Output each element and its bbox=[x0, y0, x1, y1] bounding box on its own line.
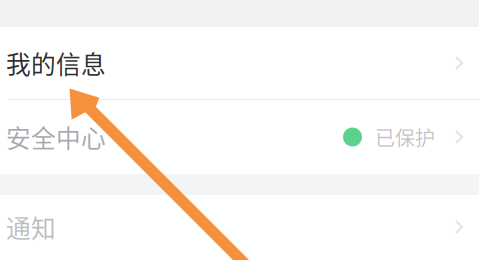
button[interactable]: 安全中心 bbox=[0, 100, 479, 174]
staticText: 我的信息 bbox=[6, 45, 106, 81]
button[interactable]: 通知 bbox=[0, 195, 479, 259]
staticText: 已保护 bbox=[375, 122, 435, 151]
button[interactable]: 我的信息 bbox=[0, 27, 479, 99]
staticText: 安全中心 bbox=[6, 119, 106, 155]
staticText: 通知 bbox=[6, 209, 56, 245]
